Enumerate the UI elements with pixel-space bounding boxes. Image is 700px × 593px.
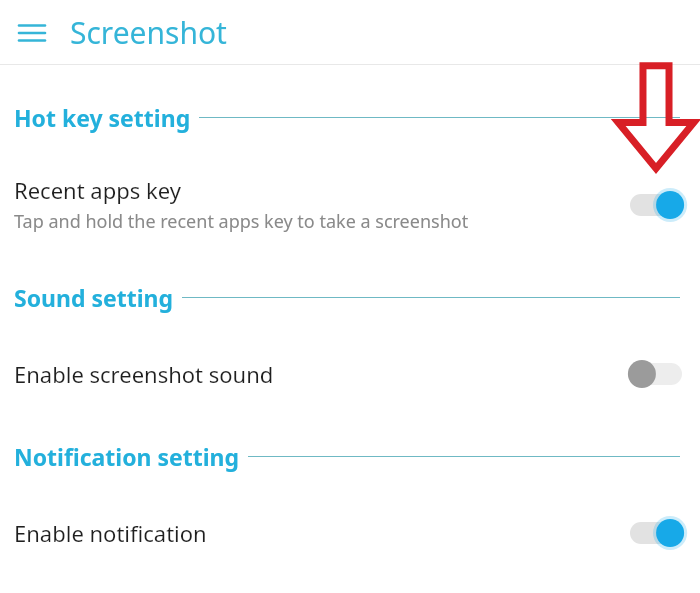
- staticText: Sound setting: [14, 282, 174, 313]
- staticText: Recent apps key: [14, 175, 181, 205]
- staticText: Hot key setting: [14, 102, 191, 133]
- staticText: Notification setting: [14, 441, 240, 472]
- staticText: Enable notification: [14, 518, 207, 548]
- staticText: Screenshot: [70, 12, 227, 53]
- button[interactable]: Toggle on: [626, 516, 686, 550]
- button[interactable]: Open navigation menu: [10, 11, 54, 55]
- button[interactable]: Enable notification: [0, 516, 700, 550]
- button[interactable]: Enable screenshot sound: [0, 357, 700, 391]
- button[interactable]: Toggle off: [626, 357, 686, 391]
- staticText: Enable screenshot sound: [14, 359, 274, 389]
- button[interactable]: Recent apps key: [0, 175, 700, 234]
- button[interactable]: Toggle on: [626, 188, 686, 222]
- staticText: Tap and hold the recent apps key to take…: [14, 209, 469, 234]
